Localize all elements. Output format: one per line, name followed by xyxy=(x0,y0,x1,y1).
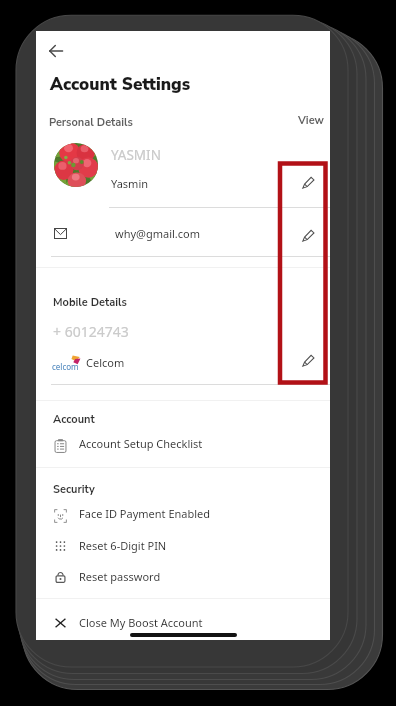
staticText: + 60124743 xyxy=(53,322,129,341)
staticText: View xyxy=(298,113,324,128)
staticText: Account Settings xyxy=(50,73,191,96)
button[interactable]: Reset password xyxy=(36,564,330,594)
staticText: Account xyxy=(53,412,95,427)
staticText: Reset 6-Digit PIN xyxy=(79,538,167,553)
button[interactable]: Back xyxy=(42,37,70,65)
staticText: Close My Boost Account xyxy=(79,615,203,630)
button[interactable]: Reset 6-Digit PIN xyxy=(36,533,330,563)
staticText: why@gmail.com xyxy=(115,226,201,241)
staticText: Celcom xyxy=(86,355,125,370)
staticText: Account Setup Checklist xyxy=(79,436,203,451)
staticText: Yasmin xyxy=(111,176,149,191)
staticText: Mobile Details xyxy=(53,295,127,310)
button[interactable]: Face ID Payment Enabled xyxy=(36,501,330,531)
staticText: Reset password xyxy=(79,569,161,584)
button[interactable]: Edit xyxy=(290,164,326,200)
button[interactable]: View xyxy=(286,109,324,131)
staticText: Security xyxy=(53,482,95,497)
button[interactable]: Edit xyxy=(290,217,326,253)
staticText: Face ID Payment Enabled xyxy=(79,506,211,521)
button[interactable]: Edit xyxy=(290,342,326,378)
staticText: YASMIN xyxy=(111,146,161,164)
staticText: celcom xyxy=(52,361,79,372)
staticText: Personal Details xyxy=(49,115,133,130)
button[interactable]: Close My Boost Account xyxy=(36,610,330,640)
button[interactable]: Account Setup Checklist xyxy=(36,431,330,461)
